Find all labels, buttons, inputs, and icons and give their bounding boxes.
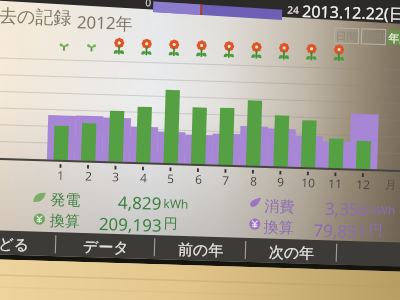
staticText: 消費 xyxy=(264,197,295,217)
staticText: 円 xyxy=(368,221,383,240)
staticText: 11 xyxy=(328,175,342,191)
staticText: 10 xyxy=(301,174,315,190)
staticText: 2012年 xyxy=(76,10,133,35)
staticText: 12 xyxy=(356,176,370,192)
staticText: kWh xyxy=(370,201,395,218)
staticText: 2 xyxy=(85,167,92,184)
staticText: 1 xyxy=(57,167,64,183)
staticText: 前の年 xyxy=(178,240,224,259)
staticText: 発電 xyxy=(50,190,81,210)
staticText: 0 xyxy=(145,0,152,9)
staticText: kWh xyxy=(163,195,189,212)
staticText: 209,193 xyxy=(41,210,162,237)
button[interactable]: 月間 xyxy=(361,29,386,44)
staticText: 8 xyxy=(250,172,257,189)
staticText: 3 xyxy=(112,168,119,185)
staticText: 年間 xyxy=(388,31,400,45)
staticText: 4 xyxy=(140,169,147,185)
button[interactable]: 年間 xyxy=(387,30,400,45)
staticText: 換算 xyxy=(263,218,294,238)
staticText: 9 xyxy=(277,173,284,190)
staticText: 2013.12.22(日) xyxy=(302,0,400,25)
staticText: データ xyxy=(83,237,129,256)
staticText: 4,829 xyxy=(41,188,162,215)
staticText: 円 xyxy=(163,215,178,233)
staticText: 79,851 xyxy=(246,216,367,243)
staticText: 去の記録 xyxy=(0,5,72,30)
staticText: 月 xyxy=(385,178,396,192)
staticText: 7 xyxy=(222,172,229,188)
staticText: 3,356 xyxy=(248,194,369,221)
staticText: 換算 xyxy=(49,211,80,231)
staticText: 月間 xyxy=(362,30,385,45)
button[interactable]: 日間 xyxy=(334,28,359,44)
staticText: 5 xyxy=(167,170,174,186)
button[interactable]: データ xyxy=(56,237,155,257)
button[interactable]: もどる xyxy=(0,234,55,254)
staticText: もどる xyxy=(0,234,30,253)
button[interactable]: 前の年 xyxy=(155,240,246,259)
staticText: 24 xyxy=(287,3,299,17)
button[interactable]: 次の年 xyxy=(246,242,337,262)
staticText: 日間 xyxy=(335,29,358,44)
staticText: 6 xyxy=(195,171,202,187)
staticText: 次の年 xyxy=(269,243,315,261)
